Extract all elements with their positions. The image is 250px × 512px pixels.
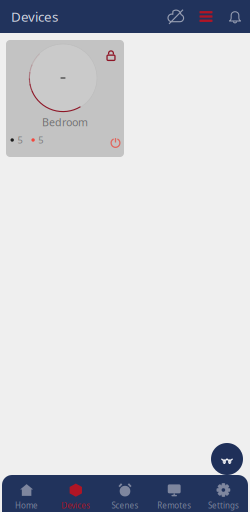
button[interactable]: Scenes	[100, 475, 150, 512]
staticText: Remotes	[157, 500, 191, 511]
staticText: Bedroom	[42, 115, 88, 129]
staticText: Devices	[61, 500, 90, 511]
button[interactable]: Cloud sync off	[164, 4, 188, 28]
button[interactable]: Notifications	[226, 4, 244, 28]
staticText: Settings	[208, 500, 239, 511]
button[interactable]: Remotes	[150, 475, 199, 512]
button[interactable]: Hubs	[197, 4, 215, 28]
staticText: Scenes	[111, 500, 138, 511]
staticText: 5	[38, 134, 43, 146]
button[interactable]: Bedroom	[6, 40, 124, 157]
staticText: 5	[17, 134, 22, 146]
staticText: Devices	[11, 8, 58, 25]
button[interactable]: Add light	[211, 443, 243, 475]
button[interactable]: Devices	[11, 0, 58, 33]
button[interactable]: Settings	[199, 475, 248, 512]
button[interactable]: Devices	[51, 475, 100, 512]
staticText: Home	[15, 500, 38, 511]
button[interactable]: Home	[2, 475, 51, 512]
